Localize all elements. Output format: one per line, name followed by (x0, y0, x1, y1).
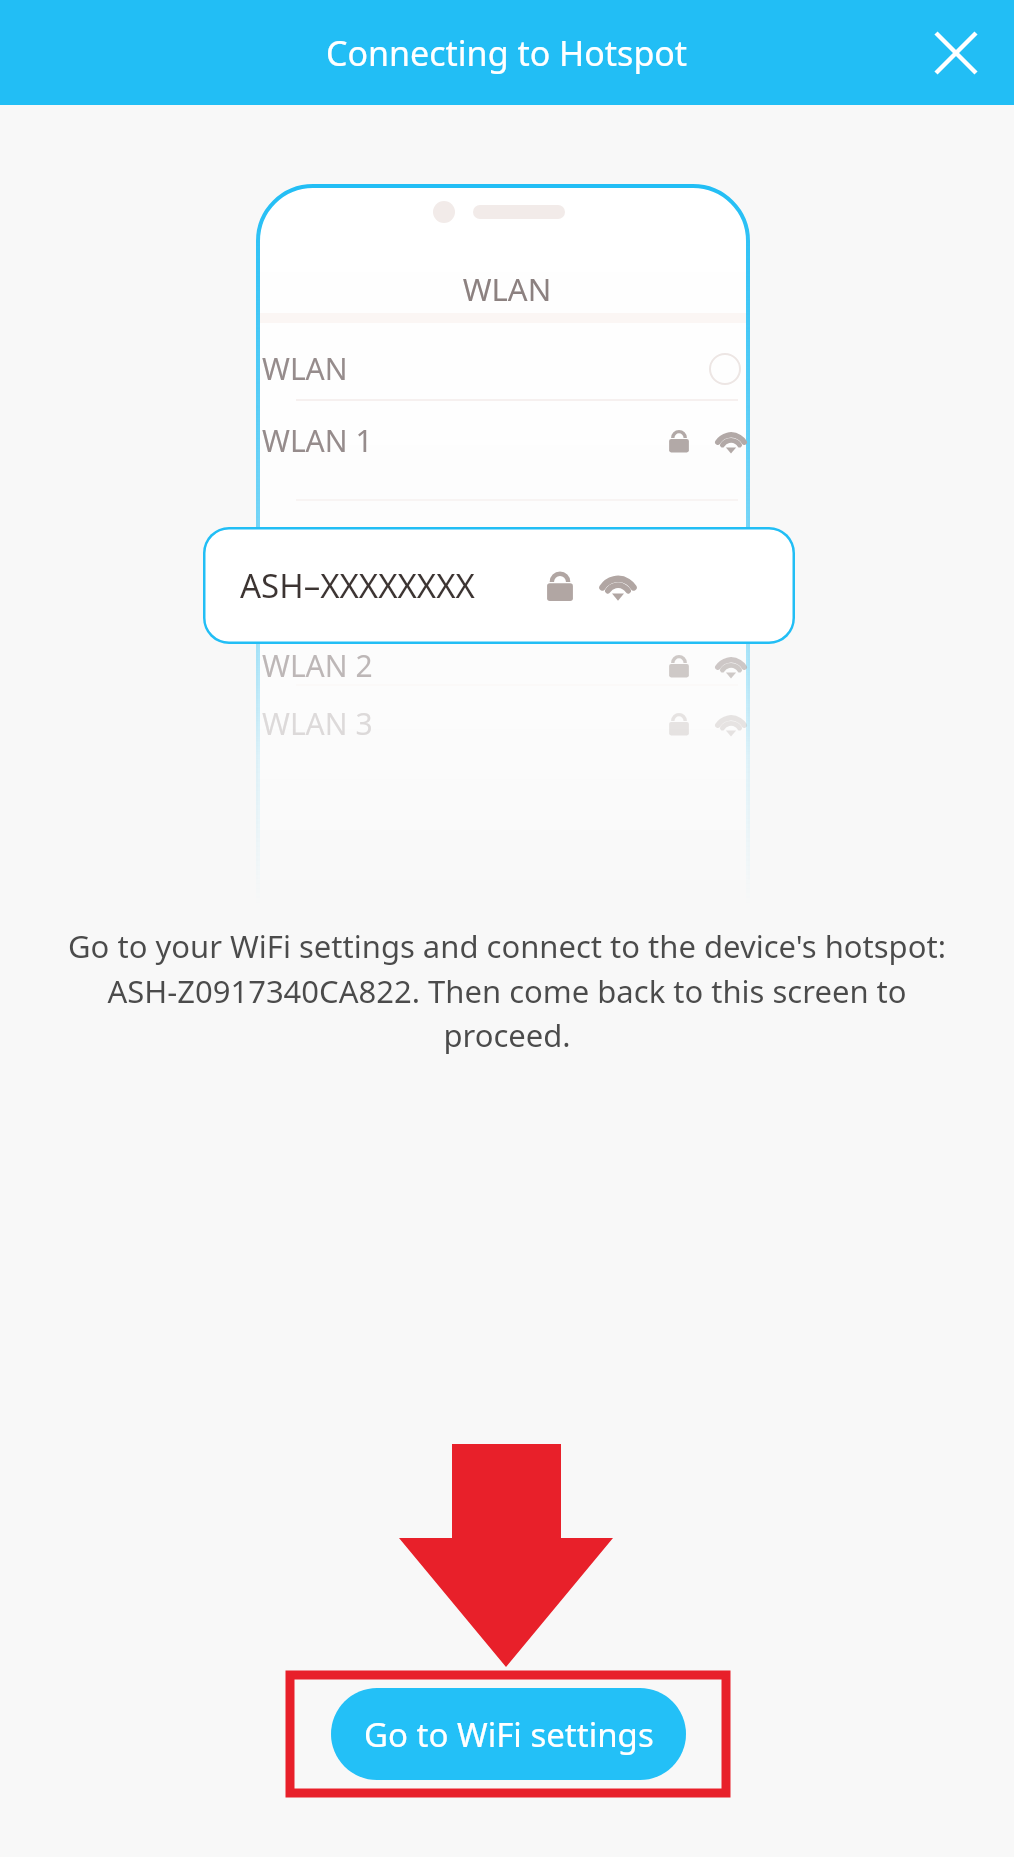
staticText: Go to your WiFi settings and connect to … (42, 925, 972, 1056)
staticText: ASH–XXXXXXXX (240, 563, 475, 608)
button[interactable]: Close (916, 13, 996, 93)
staticText: WLAN 2 (262, 645, 373, 686)
staticText: WLAN 1 (262, 420, 373, 461)
staticText: WLAN (262, 348, 348, 389)
button[interactable]: Go to WiFi settings (331, 1688, 686, 1780)
staticText: Connecting to Hotspot (326, 30, 688, 76)
staticText: WLAN (0, 268, 1014, 310)
staticText: WLAN 3 (262, 703, 373, 744)
staticText: Go to WiFi settings (364, 1712, 654, 1757)
button[interactable]: ASH–XXXXXXXX (203, 527, 795, 644)
